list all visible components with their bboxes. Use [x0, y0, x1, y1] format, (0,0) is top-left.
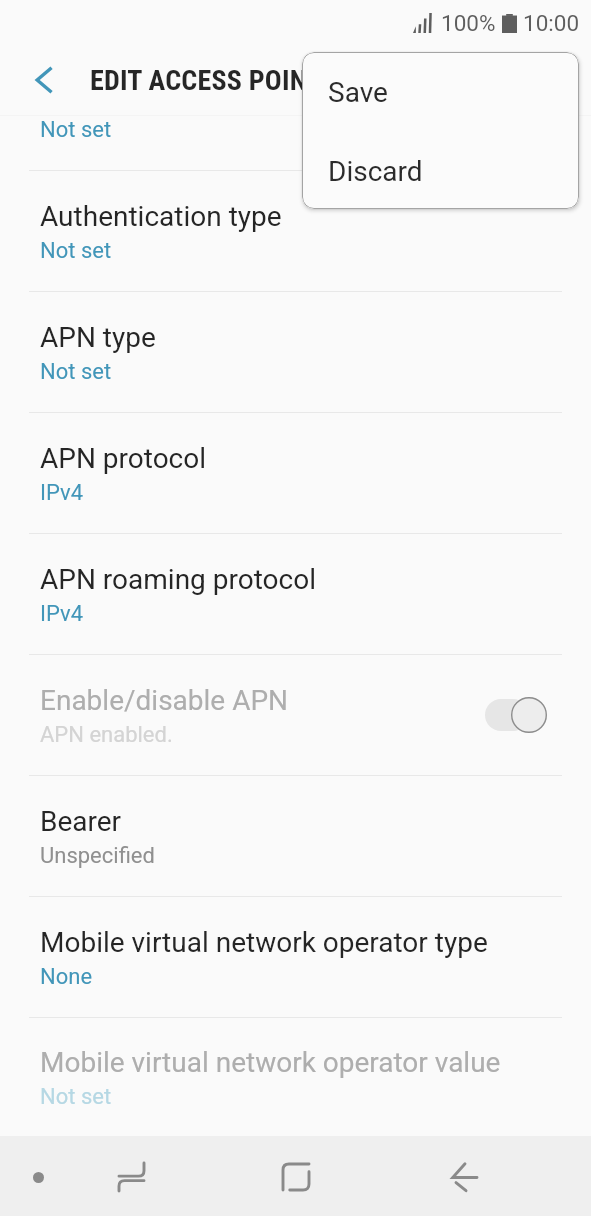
button[interactable]: APN roaming protocol	[0, 534, 591, 654]
button[interactable]: Navigate up	[21, 57, 67, 103]
staticText: APN protocol	[40, 442, 207, 475]
staticText: Discard	[328, 155, 423, 188]
staticText: Not set	[40, 359, 112, 385]
button[interactable]: Home	[264, 1145, 328, 1209]
button[interactable]: Show navigation buttons	[6, 1145, 70, 1209]
staticText: APN roaming protocol	[40, 563, 316, 596]
staticText: Not set	[40, 1084, 112, 1110]
staticText: Not set	[40, 238, 112, 264]
staticText: IPv4	[40, 601, 84, 627]
button[interactable]: Mobile virtual network operator type	[0, 897, 591, 1017]
button[interactable]: Save	[302, 52, 579, 130]
staticText: 100%	[441, 10, 496, 36]
button[interactable]: Enable or disable APN	[485, 697, 547, 733]
staticText: None	[40, 964, 93, 990]
button[interactable]: APN type	[0, 292, 591, 412]
button[interactable]: Back	[432, 1145, 496, 1209]
staticText: Save	[328, 76, 388, 109]
staticText: Authentication type	[40, 200, 282, 233]
staticText: Mobile virtual network operator type	[40, 926, 488, 959]
staticText: Not set	[40, 117, 112, 143]
button[interactable]: Bearer	[0, 776, 591, 896]
button[interactable]: Mobile virtual network operator value	[0, 1018, 591, 1136]
staticText: Unspecified	[40, 843, 155, 869]
staticText: APN enabled.	[40, 722, 173, 748]
staticText: Mobile virtual network operator value	[40, 1046, 501, 1079]
button[interactable]: Not set	[0, 116, 591, 170]
button[interactable]: Recent apps	[99, 1145, 163, 1209]
staticText: EDIT ACCESS POINT	[90, 64, 323, 97]
button[interactable]: APN protocol	[0, 413, 591, 533]
button[interactable]: Discard	[302, 130, 579, 209]
staticText: Enable/disable APN	[40, 684, 289, 717]
staticText: 10:00	[523, 10, 580, 36]
staticText: IPv4	[40, 480, 84, 506]
button[interactable]: Enable/disable APN	[0, 655, 591, 775]
staticText: Bearer	[40, 805, 122, 838]
staticText: APN type	[40, 321, 156, 354]
button[interactable]: Authentication type	[0, 171, 591, 291]
